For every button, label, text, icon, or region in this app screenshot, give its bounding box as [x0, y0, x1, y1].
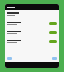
button[interactable]: Action: [49, 40, 57, 43]
button[interactable]: Action: [5, 28, 59, 37]
button[interactable]: Action: [5, 37, 59, 46]
button[interactable]: Action: [5, 19, 59, 28]
button[interactable]: [5, 4, 59, 10]
button[interactable]: Chip: [7, 57, 12, 60]
button[interactable]: [5, 62, 59, 68]
button[interactable]: Action: [49, 31, 57, 34]
button[interactable]: Chip2: [52, 57, 57, 60]
button[interactable]: Action: [49, 22, 57, 25]
